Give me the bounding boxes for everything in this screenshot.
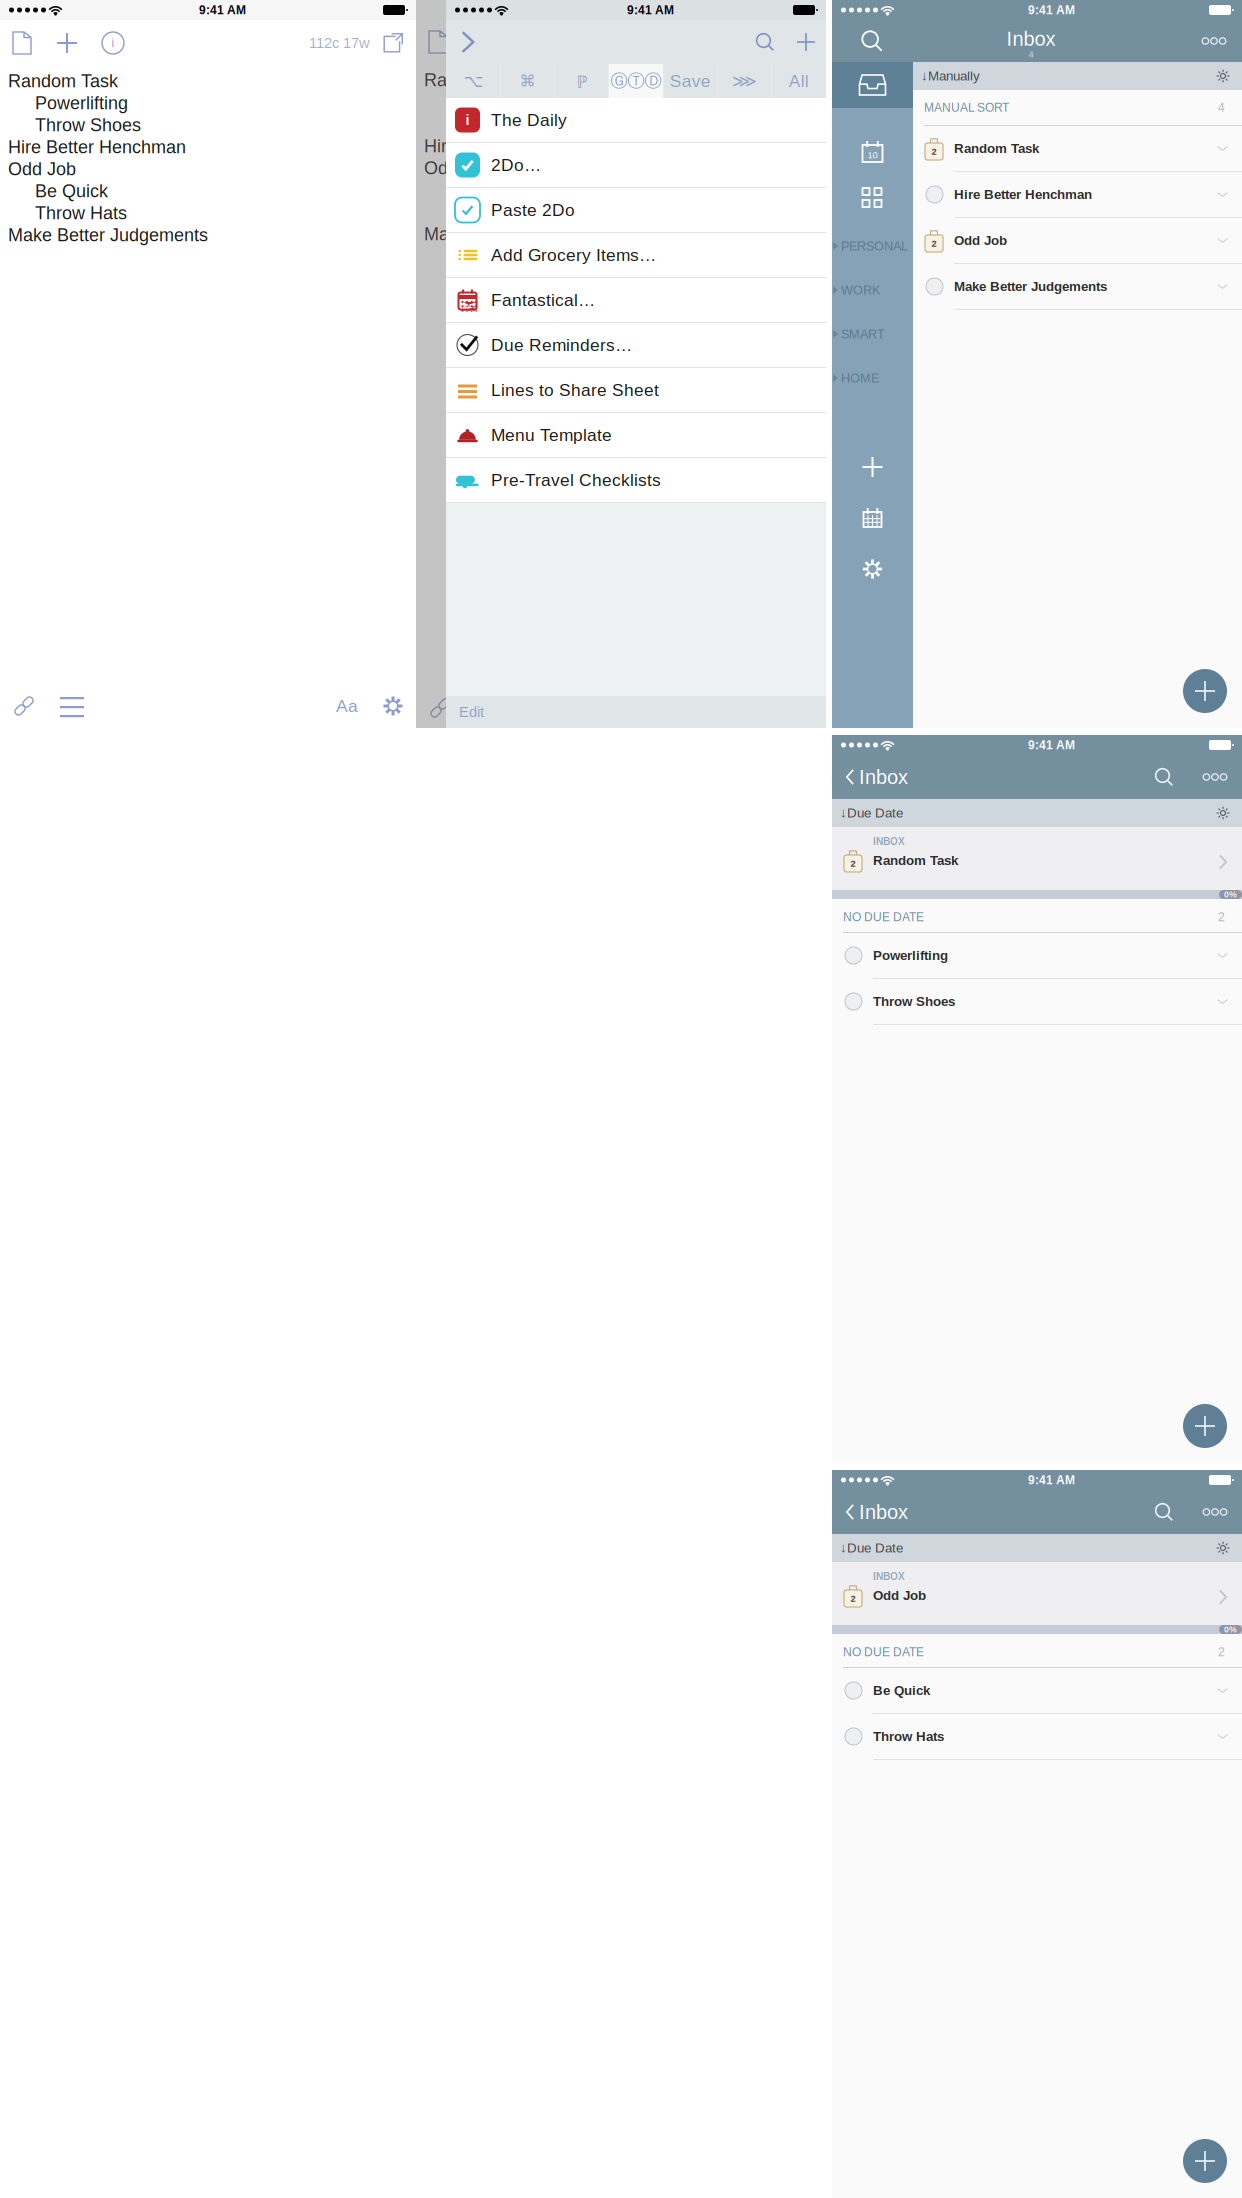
staticText: 2 (931, 238, 936, 249)
button[interactable]: Throw Shoes (832, 979, 1242, 1025)
button[interactable]: New task (832, 445, 913, 489)
button[interactable]: Outline (48, 697, 96, 715)
button[interactable]: WORK (832, 274, 913, 306)
button[interactable]: Powerlifting (832, 933, 1242, 979)
staticText: ⌘ (519, 72, 535, 90)
button[interactable]: More (1186, 19, 1242, 63)
staticText: Odd Job (424, 158, 492, 178)
button[interactable]: Lines to Share Sheet (446, 368, 826, 413)
staticText: ⌥ (463, 71, 483, 91)
button[interactable]: ℙ (555, 64, 609, 98)
button[interactable]: HOME (832, 362, 913, 394)
staticText: WORK (841, 283, 880, 297)
button[interactable]: Save (663, 64, 717, 98)
staticText: Odd Job (954, 233, 1007, 248)
staticText: Hire Better Henchman (8, 137, 186, 157)
button[interactable]: Inbox (832, 62, 913, 108)
button[interactable]: Search (832, 20, 912, 62)
staticText: HOME (841, 371, 879, 385)
button[interactable]: INBOX (832, 827, 1242, 890)
staticText: Random Task (424, 70, 534, 90)
button[interactable]: Edit (446, 696, 484, 728)
staticText: Paste 2Do (491, 200, 575, 220)
button[interactable]: New task (1183, 1404, 1227, 1448)
staticText: 9:41 AM (1028, 738, 1075, 752)
button[interactable]: ⌥ (446, 64, 500, 98)
button[interactable]: New document (0, 31, 44, 55)
staticText: Random Task (8, 71, 118, 91)
button[interactable]: Appearance (1216, 806, 1242, 820)
staticText: ℙ (576, 69, 587, 93)
button[interactable]: Fantastical… (446, 278, 826, 323)
button[interactable]: Add (44, 32, 90, 54)
staticText: 4 (1028, 49, 1033, 59)
staticText: MANUAL SORT (924, 101, 1009, 114)
button[interactable]: Hire Better Henchman (913, 172, 1242, 218)
button[interactable]: Info (90, 32, 136, 54)
button[interactable]: Documents (370, 32, 416, 54)
button[interactable]: Paste 2Do (446, 188, 826, 233)
button[interactable]: Pre-Travel Checklists (446, 458, 826, 503)
button[interactable]: ⌘ (500, 64, 555, 98)
staticText: Save (670, 71, 711, 91)
button[interactable]: More (1188, 755, 1242, 799)
button[interactable]: All lists (832, 176, 913, 220)
button[interactable]: Aa (324, 696, 370, 716)
staticText: ↓ (840, 806, 847, 820)
button[interactable]: 2Do… (446, 143, 826, 188)
button[interactable]: PERSONAL (832, 230, 913, 262)
button[interactable]: ⋙ (717, 64, 772, 98)
button[interactable]: Settings (370, 695, 416, 717)
button[interactable]: 2 (913, 218, 1242, 264)
staticText: Add Grocery Items… (491, 245, 656, 265)
staticText: Odd Job (873, 1588, 926, 1603)
button[interactable]: Throw Hats (832, 1714, 1242, 1760)
button[interactable]: Be Quick (832, 1668, 1242, 1714)
button[interactable]: Make Better Judgements (913, 264, 1242, 310)
button[interactable]: Appearance (1216, 1541, 1242, 1555)
staticText: Throw Hats (35, 203, 127, 223)
staticText: Throw Hats (451, 202, 543, 222)
button[interactable]: More (1188, 1490, 1242, 1534)
button[interactable]: Search (1140, 755, 1188, 799)
button[interactable]: Inbox (832, 1490, 908, 1534)
staticText: Inbox (859, 1501, 908, 1523)
button[interactable]: Settings (832, 547, 913, 591)
button[interactable]: Inbox (832, 755, 908, 799)
button[interactable]: New task (1183, 2139, 1227, 2183)
staticText: Due Date (847, 1541, 903, 1555)
staticText: Aa (336, 696, 358, 716)
button[interactable]: i (446, 98, 826, 143)
staticText: ↓ (840, 1541, 847, 1555)
button[interactable]: Search (1140, 1490, 1188, 1534)
staticText: 2 (1218, 910, 1225, 924)
button[interactable]: New task (1183, 669, 1227, 713)
button[interactable]: All (772, 64, 826, 98)
staticText: 9:41 AM (1028, 1473, 1075, 1487)
button[interactable]: Today (832, 130, 913, 174)
staticText: Hire Better Henchman (954, 187, 1092, 202)
staticText: Inbox (1006, 28, 1055, 50)
staticText: Pre-Travel Checklists (491, 470, 661, 490)
button[interactable]: Menu Template (446, 413, 826, 458)
button[interactable]: ⒼⓉⒹ (609, 64, 663, 98)
staticText: Powerlifting (35, 93, 128, 113)
button[interactable]: SMART (832, 318, 913, 350)
button[interactable]: INBOX (832, 1562, 1242, 1625)
button[interactable]: Search (744, 20, 786, 64)
button[interactable]: 2 (913, 126, 1242, 172)
button[interactable]: Add Grocery Items… (446, 233, 826, 278)
button[interactable]: Link (0, 694, 48, 718)
button[interactable]: Add (786, 20, 826, 64)
button[interactable]: Calendar (832, 496, 913, 540)
button[interactable]: Due Reminders… (446, 323, 826, 368)
button[interactable]: Appearance (1216, 69, 1242, 83)
staticText: 9:41 AM (199, 3, 246, 17)
staticText: Throw Shoes (451, 114, 557, 134)
staticText: Make Better Judgements (954, 279, 1107, 294)
staticText: INBOX (873, 836, 905, 847)
staticText: Due Date (847, 806, 903, 820)
button[interactable]: Forward (446, 20, 490, 64)
staticText: Be Quick (35, 181, 108, 201)
staticText: Menu Template (491, 425, 612, 445)
